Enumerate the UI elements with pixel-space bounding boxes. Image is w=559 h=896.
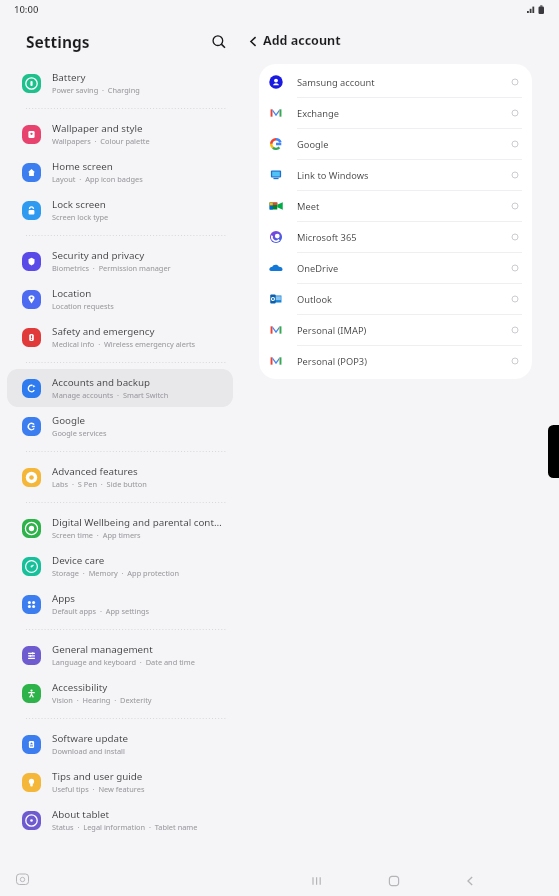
staticText: General management <box>52 643 153 656</box>
button[interactable]: Microsoft 365 <box>259 222 532 252</box>
staticText: Wallpaper and style <box>52 122 143 135</box>
button[interactable]: About tablet <box>7 801 233 839</box>
staticText: Medical info · Wireless emergency alerts <box>52 339 196 349</box>
button[interactable]: Google <box>7 407 233 445</box>
staticText: Personal (IMAP) <box>297 324 367 337</box>
button[interactable]: Wallpaper and style <box>7 115 233 153</box>
staticText: Labs · S Pen · Side button <box>52 479 147 489</box>
staticText: Screen time · App timers <box>52 530 141 540</box>
staticText: Google <box>52 414 86 427</box>
staticText: Digital Wellbeing and parental controls <box>52 516 225 529</box>
staticText: Advanced features <box>52 465 138 478</box>
button[interactable]: Lock screen <box>7 191 233 229</box>
button[interactable]: Exchange <box>259 98 532 128</box>
staticText: Tips and user guide <box>52 770 143 783</box>
button[interactable]: Google <box>259 129 532 159</box>
button[interactable]: Apps <box>7 585 233 623</box>
staticText: Google <box>297 138 329 151</box>
button[interactable]: Security and privacy <box>7 242 233 280</box>
button[interactable]: Home screen <box>7 153 233 191</box>
button[interactable]: Back <box>241 29 265 53</box>
staticText: Accounts and backup <box>52 376 151 389</box>
staticText: Outlook <box>297 293 332 306</box>
button[interactable]: Digital Wellbeing and parental controls <box>7 509 233 547</box>
button[interactable]: Accounts and backup <box>7 369 233 407</box>
staticText: Wallpapers · Colour palette <box>52 136 150 146</box>
staticText: Google services <box>52 428 107 438</box>
staticText: Safety and emergency <box>52 325 155 338</box>
staticText: Settings <box>26 31 90 52</box>
button[interactable]: Search <box>206 29 232 55</box>
button[interactable]: Location <box>7 280 233 318</box>
staticText: Storage · Memory · App protection <box>52 568 180 578</box>
staticText: Language and keyboard · Date and time <box>52 657 195 667</box>
staticText: Download and install <box>52 746 125 756</box>
staticText: Location <box>52 287 92 300</box>
button[interactable]: Accessibility <box>7 674 233 712</box>
staticText: Default apps · App settings <box>52 606 150 616</box>
button[interactable]: Outlook <box>259 284 532 314</box>
staticText: Personal (POP3) <box>297 355 367 368</box>
button[interactable]: Advanced features <box>7 458 233 496</box>
button[interactable]: Software update <box>7 725 233 763</box>
staticText: Battery <box>52 71 86 84</box>
button[interactable]: Recent capture <box>14 871 31 888</box>
staticText: Microsoft 365 <box>297 231 357 244</box>
staticText: Status · Legal information · Tablet name <box>52 822 198 832</box>
staticText: Biometrics · Permission manager <box>52 263 171 273</box>
button[interactable]: Back <box>459 870 481 892</box>
button[interactable]: Link to Windows <box>259 160 532 190</box>
button[interactable]: Home <box>383 870 405 892</box>
staticText: Apps <box>52 592 76 605</box>
staticText: Add account <box>263 32 341 49</box>
staticText: 10:00 <box>14 3 39 16</box>
staticText: Manage accounts · Smart Switch <box>52 390 169 400</box>
staticText: Useful tips · New features <box>52 784 145 794</box>
staticText: Samsung account <box>297 76 375 89</box>
button[interactable]: Personal (POP3) <box>259 346 532 376</box>
button[interactable]: Device care <box>7 547 233 585</box>
staticText: Security and privacy <box>52 249 145 262</box>
staticText: Layout · App icon badges <box>52 174 143 184</box>
button[interactable]: OneDrive <box>259 253 532 283</box>
button[interactable]: Samsung account <box>259 67 532 97</box>
button[interactable]: Tips and user guide <box>7 763 233 801</box>
staticText: Screen lock type <box>52 212 109 222</box>
staticText: About tablet <box>52 808 109 821</box>
staticText: Vision · Hearing · Dexterity <box>52 695 152 705</box>
staticText: Home screen <box>52 160 113 173</box>
staticText: Device care <box>52 554 105 567</box>
staticText: Exchange <box>297 107 340 120</box>
staticText: Link to Windows <box>297 169 369 182</box>
button[interactable]: Battery <box>7 64 233 102</box>
staticText: Location requests <box>52 301 114 311</box>
staticText: Power saving · Charging <box>52 85 140 95</box>
staticText: Meet <box>297 200 320 213</box>
button[interactable]: Meet <box>259 191 532 221</box>
staticText: Accessibility <box>52 681 108 694</box>
button[interactable]: Edge panel handle <box>548 425 559 478</box>
button[interactable]: Personal (IMAP) <box>259 315 532 345</box>
staticText: Lock screen <box>52 198 106 211</box>
button[interactable]: General management <box>7 636 233 674</box>
staticText: Software update <box>52 732 128 745</box>
button[interactable]: Recents <box>306 870 328 892</box>
staticText: OneDrive <box>297 262 339 275</box>
button[interactable]: Safety and emergency <box>7 318 233 356</box>
